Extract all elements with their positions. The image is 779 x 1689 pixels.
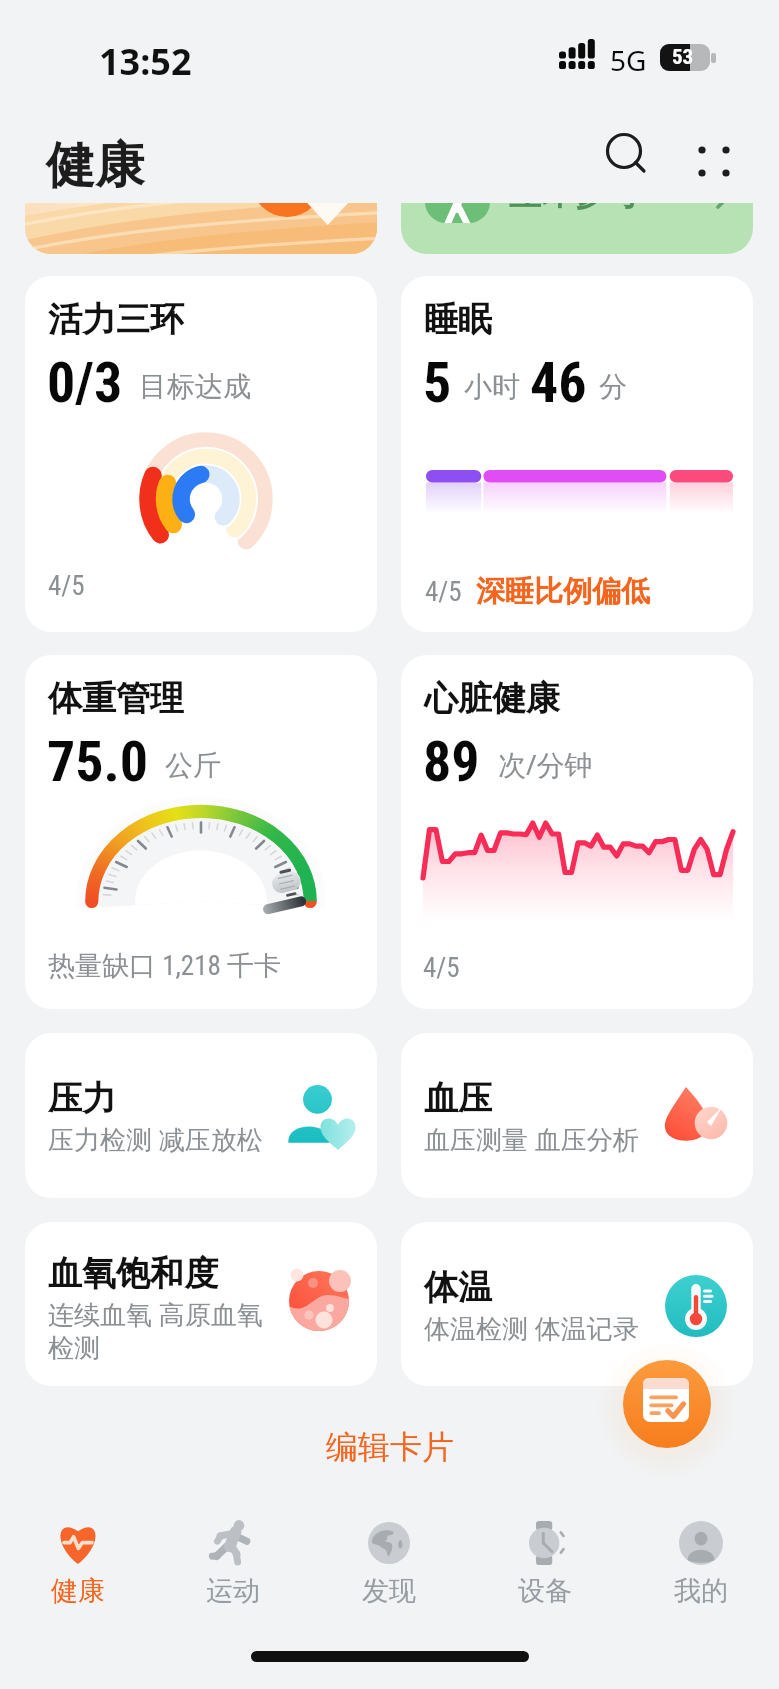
staticText: 75.0 [47, 729, 149, 795]
staticText: 编辑卡片 [326, 1427, 454, 1467]
staticText: 健康 [46, 135, 144, 197]
staticText: 压力检测 减压放松 [48, 1121, 278, 1157]
button[interactable]: 立即参与 [401, 203, 753, 254]
button[interactable]: 运动 [155, 1521, 311, 1621]
button[interactable]: 体重管理 [25, 655, 377, 1009]
staticText: 连续血氧 高原血氧 检测 [48, 1296, 278, 1365]
staticText: 发现 [362, 1574, 416, 1608]
staticText: 53 [672, 45, 694, 70]
staticText: 次/分钟 [498, 745, 593, 783]
button[interactable]: Search [597, 128, 657, 188]
staticText: 体重管理 [48, 677, 184, 720]
staticText: 热量缺口 1,218 千卡 [48, 949, 282, 983]
button[interactable]: 压力 [25, 1033, 377, 1198]
button[interactable]: 心脏健康 [401, 655, 753, 1009]
staticText: 体温检测 体温记录 [424, 1310, 654, 1346]
staticText: 4/5 [423, 952, 460, 984]
button[interactable]: 血氧饱和度 [25, 1222, 377, 1386]
staticText: 4/5 [425, 576, 462, 608]
staticText: 压力 [48, 1077, 116, 1120]
staticText: 5 [423, 350, 452, 416]
button[interactable]: More options [684, 132, 744, 192]
button[interactable]: 我的 [623, 1521, 779, 1621]
staticText: 89 [423, 729, 480, 795]
staticText: 活力三环 [48, 298, 184, 341]
staticText: 分 [599, 369, 627, 404]
staticText: 睡眠 [424, 298, 492, 341]
button[interactable]: 设备 [467, 1521, 623, 1621]
staticText: 小时 [464, 369, 520, 404]
staticText: 13:52 [99, 37, 192, 86]
button[interactable]: 发现 [311, 1521, 467, 1621]
staticText: 0/3 [47, 350, 123, 416]
button[interactable]: 睡眠 [401, 276, 753, 632]
staticText: 深睡比例偏低 [476, 573, 650, 610]
staticText: 46 [530, 350, 587, 416]
staticText: 公斤 [165, 748, 221, 783]
staticText: 5G [610, 41, 647, 79]
staticText: 健康 [51, 1574, 105, 1608]
staticText: 设备 [518, 1574, 572, 1608]
button[interactable]: 编辑卡片 [290, 1418, 490, 1476]
button[interactable] [25, 203, 377, 254]
staticText: 体温 [424, 1266, 492, 1309]
button[interactable]: 活力三环 [25, 276, 377, 632]
staticText: 血压 [424, 1077, 492, 1120]
staticText: 运动 [206, 1574, 260, 1608]
staticText: 心脏健康 [424, 677, 560, 720]
button[interactable]: 健康 [0, 1521, 155, 1621]
staticText: 目标达成 [139, 369, 251, 404]
button[interactable]: Add health record [623, 1360, 711, 1448]
staticText: 立即参与 [509, 203, 637, 214]
staticText: 血氧饱和度 [48, 1252, 218, 1295]
button[interactable]: 血压 [401, 1033, 753, 1198]
button[interactable]: 体温 [401, 1222, 753, 1386]
staticText: 4/5 [48, 570, 85, 602]
staticText: 我的 [674, 1574, 728, 1608]
staticText: 血压测量 血压分析 [424, 1121, 654, 1157]
